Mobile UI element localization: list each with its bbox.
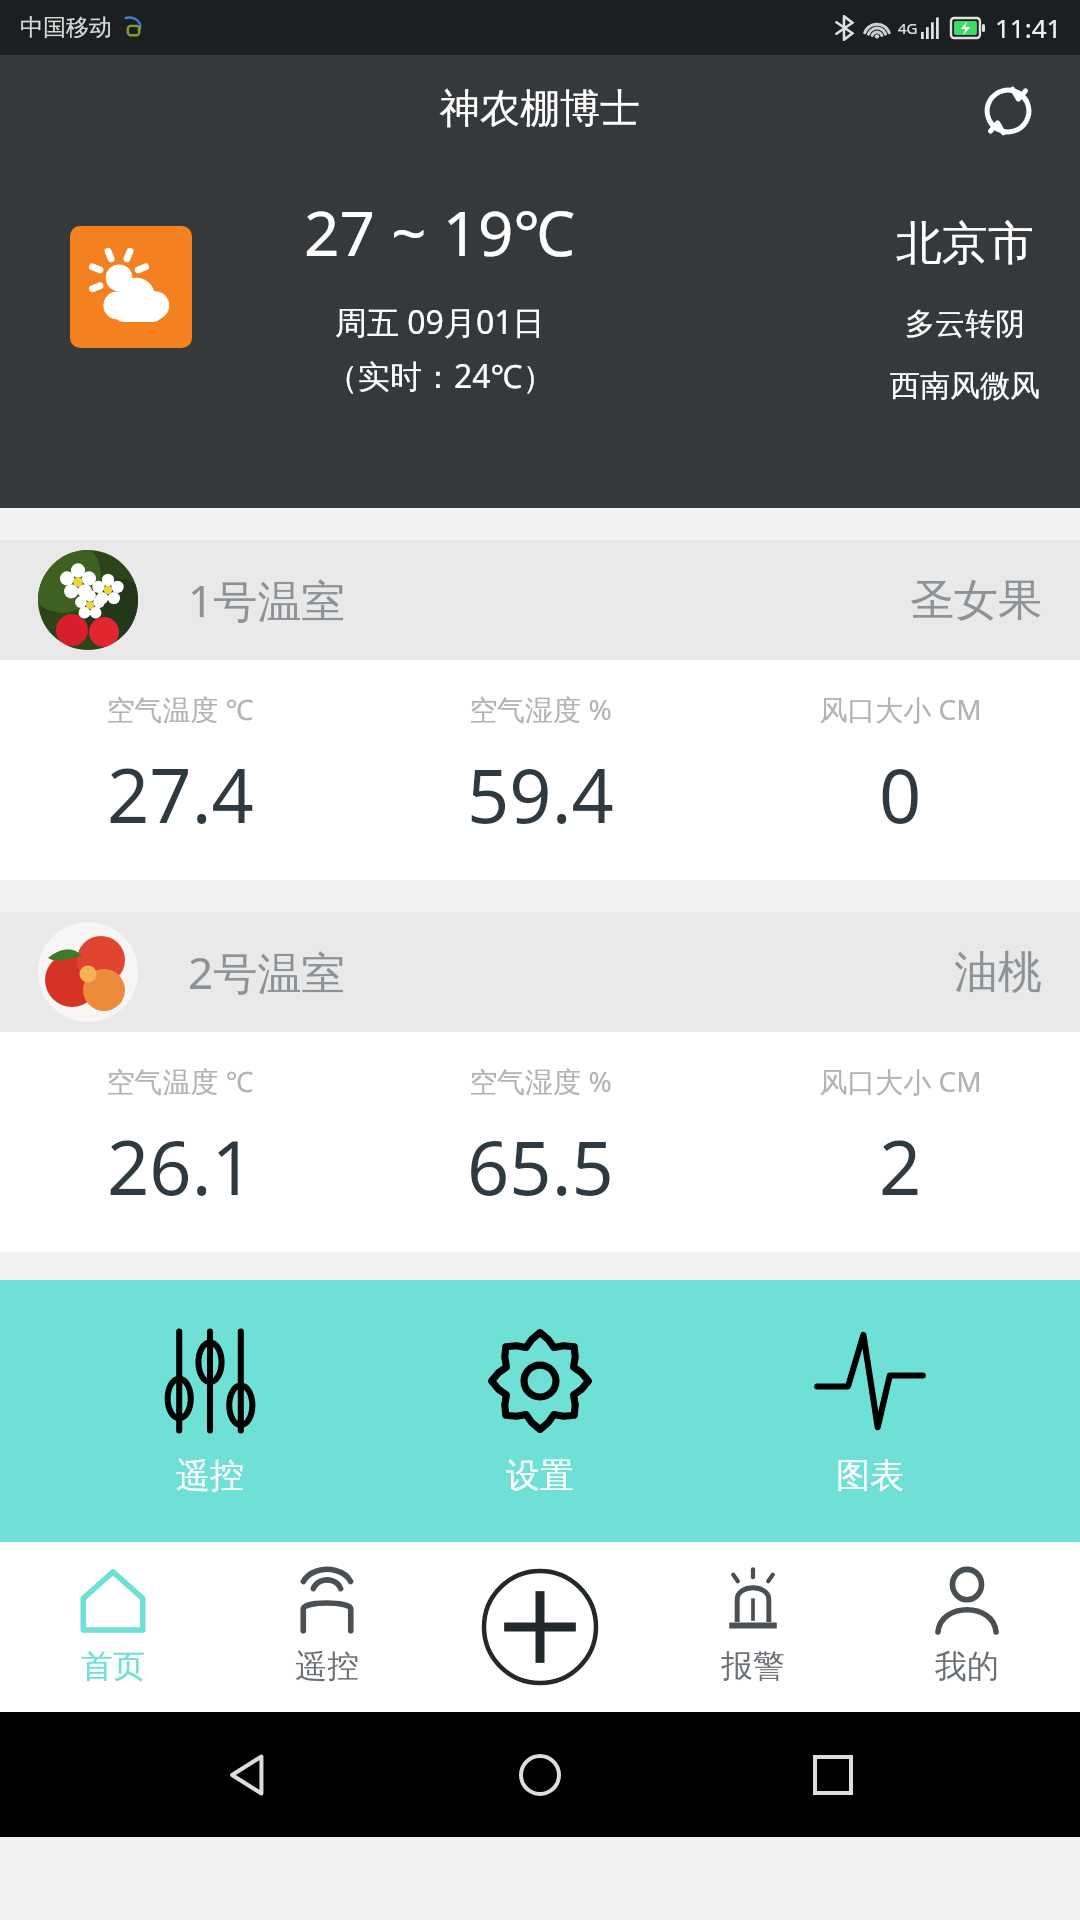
- staticText: 设置: [506, 1454, 574, 1497]
- staticText: 2号温室: [188, 942, 346, 1002]
- button[interactable]: 刷新: [972, 75, 1044, 147]
- button[interactable]: 图表: [750, 1280, 990, 1542]
- staticText: 空气湿度 %: [469, 690, 612, 728]
- button[interactable]: 添加: [440, 1542, 640, 1712]
- button[interactable]: 1号温室: [0, 540, 1080, 880]
- staticText: 空气温度 ℃: [106, 690, 254, 728]
- staticText: 27 ~ 19℃: [304, 190, 576, 274]
- staticText: 0: [879, 744, 922, 845]
- button[interactable]: 我的: [867, 1542, 1067, 1712]
- staticText: 报警: [721, 1646, 785, 1686]
- staticText: 北京市: [896, 215, 1034, 273]
- staticText: 空气湿度 %: [469, 1062, 612, 1100]
- button[interactable]: 遥控: [227, 1542, 427, 1712]
- staticText: 中国移动: [20, 13, 112, 42]
- staticText: 26.1: [107, 1116, 254, 1217]
- button[interactable]: 报警: [653, 1542, 853, 1712]
- staticText: （实时：24℃）: [326, 354, 555, 398]
- button[interactable]: 遥控: [90, 1280, 330, 1542]
- staticText: 2: [879, 1116, 922, 1217]
- staticText: 1号温室: [188, 570, 346, 630]
- staticText: 65.5: [467, 1116, 614, 1217]
- staticText: 11:41: [995, 10, 1062, 45]
- staticText: 神农棚博士: [440, 83, 640, 133]
- button[interactable]: 最近任务: [788, 1730, 878, 1820]
- staticText: 空气温度 ℃: [106, 1062, 254, 1100]
- button[interactable]: 2号温室: [0, 912, 1080, 1252]
- staticText: 风口大小 CM: [819, 1062, 982, 1100]
- staticText: 遥控: [176, 1454, 244, 1497]
- button[interactable]: 返回: [203, 1730, 293, 1820]
- staticText: 我的: [935, 1646, 999, 1686]
- staticText: 油桃: [954, 945, 1042, 1000]
- staticText: 59.4: [467, 744, 614, 845]
- staticText: 圣女果: [910, 573, 1042, 628]
- staticText: 首页: [81, 1646, 145, 1686]
- staticText: 4G: [898, 18, 918, 38]
- button[interactable]: 主页: [495, 1730, 585, 1820]
- staticText: 遥控: [295, 1646, 359, 1686]
- staticText: 多云转阴: [905, 305, 1025, 343]
- staticText: 图表: [836, 1454, 904, 1497]
- staticText: 27.4: [107, 744, 254, 845]
- staticText: 周五 09月01日: [335, 300, 545, 344]
- button[interactable]: 设置: [420, 1280, 660, 1542]
- staticText: 西南风微风: [890, 367, 1040, 405]
- button[interactable]: 首页: [13, 1542, 213, 1712]
- staticText: 风口大小 CM: [819, 690, 982, 728]
